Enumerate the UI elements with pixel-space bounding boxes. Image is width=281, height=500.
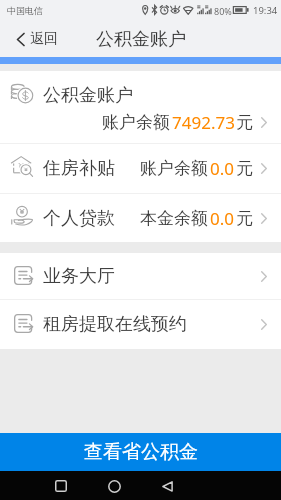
staticText: 业务大厅 [43, 265, 115, 288]
staticText: 元 [236, 158, 253, 179]
staticText: 本金余额 [140, 208, 208, 229]
staticText: 账户余额 [140, 158, 208, 179]
button[interactable]: 返回 [0, 24, 68, 54]
staticText: 账户余额 [102, 112, 170, 133]
staticText: 0.0 [210, 207, 235, 230]
staticText: 查看省公积金 [84, 440, 198, 464]
button[interactable]: 住房补贴 [0, 144, 281, 193]
staticText: 公积金账户 [96, 28, 186, 51]
button[interactable]: 租房提取在线预约 [0, 300, 281, 349]
button[interactable]: Home [100, 472, 128, 500]
button[interactable]: 查看省公积金 [0, 433, 281, 471]
staticText: 公积金账户 [43, 84, 133, 107]
staticText: 7492.73 [172, 111, 235, 134]
button[interactable]: 业务大厅 [0, 253, 281, 299]
staticText: 中国电信 [7, 5, 43, 16]
staticText: 19:34 [253, 4, 278, 17]
staticText: 元 [236, 208, 253, 229]
button[interactable]: 个人贷款 [0, 194, 281, 242]
staticText: 住房补贴 [43, 157, 115, 180]
button[interactable]: Back [153, 472, 181, 500]
staticText: 租房提取在线预约 [43, 313, 187, 336]
button[interactable]: 公积金账户 [0, 71, 281, 143]
staticText: 0.0 [210, 157, 235, 180]
staticText: 个人贷款 [43, 207, 115, 230]
staticText: 80% [214, 5, 232, 17]
staticText: 返回 [30, 30, 58, 48]
staticText: 元 [236, 112, 253, 133]
button[interactable]: Recent apps [47, 472, 75, 500]
